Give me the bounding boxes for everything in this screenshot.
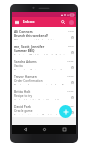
staticText: Are having. Which I would be thrilled wi… [14, 54, 67, 55]
button[interactable]: Search [59, 18, 67, 26]
staticText: Vacita [14, 64, 23, 68]
staticText: Inbox [23, 19, 35, 25]
staticText: Thank you for your recent order from Blu… [14, 84, 66, 85]
staticText: 18:20 [67, 74, 74, 77]
button[interactable]: Home [37, 125, 51, 134]
button[interactable]: Open navigation drawer [13, 18, 21, 26]
staticText: 20 m [68, 44, 74, 47]
button[interactable]: Account [67, 18, 75, 26]
staticText: me, Scott, Jennifer [14, 44, 45, 48]
button[interactable]: Star [70, 80, 74, 84]
staticText: Summer BBQ [14, 49, 35, 53]
staticText: He should eat this. Grated Squash Sara… [14, 99, 66, 100]
button[interactable]: Recent apps [57, 125, 71, 134]
button[interactable]: Star [70, 110, 74, 114]
staticText: Sandra Adams [14, 59, 37, 63]
staticText: Brunch this weekend? [14, 34, 49, 38]
staticText: I'll be in your neighborhood doing erran… [14, 39, 67, 40]
staticText: Oracle game [14, 109, 33, 113]
button[interactable]: Britta Holt [12, 87, 76, 102]
staticText: Recipe to try [14, 94, 33, 98]
staticText: Order Confirmation [14, 79, 43, 83]
staticText: 15:30 [67, 104, 74, 107]
button[interactable]: Sandra Adams [12, 57, 76, 72]
staticText: 18:35 [67, 59, 74, 62]
staticText: 15 m [68, 29, 74, 32]
button[interactable]: Star [70, 35, 74, 39]
button[interactable]: Back [18, 125, 32, 134]
staticText: Any interest in seeing Charlotte play ne… [14, 114, 66, 115]
button[interactable]: Star [70, 95, 74, 99]
staticText: Britta Holt [14, 89, 31, 93]
staticText: Trevor Hansen [14, 74, 37, 78]
button[interactable]: Star [70, 65, 74, 69]
button[interactable]: David Park [12, 102, 76, 117]
button[interactable]: Compose [59, 105, 72, 118]
staticText: David Park [14, 104, 31, 108]
staticText: Ali Connors [14, 29, 33, 33]
button[interactable]: Ali Connors [12, 27, 76, 42]
staticText: Do you have Paris recommendations? Hav… [14, 69, 66, 70]
button[interactable]: Star [70, 50, 74, 54]
staticText: 15:42 [67, 89, 74, 92]
button[interactable]: me, Scott, Jennifer [12, 42, 76, 57]
button[interactable]: Trevor Hansen [12, 72, 76, 87]
